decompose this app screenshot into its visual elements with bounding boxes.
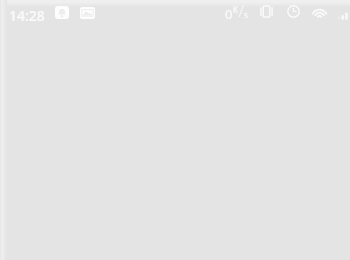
staticText: 14:28 (9, 6, 45, 25)
button[interactable]: Vibrate mode (260, 5, 273, 18)
staticText: s (244, 9, 248, 20)
button[interactable]: Screenshot (80, 7, 95, 19)
button[interactable]: Mobile signal (337, 6, 348, 20)
staticText: K (233, 4, 238, 15)
button[interactable]: Notification (55, 6, 69, 19)
button[interactable]: Wi-Fi connected (312, 5, 327, 18)
staticText: 0 (225, 5, 233, 23)
button[interactable]: Alarm set (287, 5, 300, 18)
